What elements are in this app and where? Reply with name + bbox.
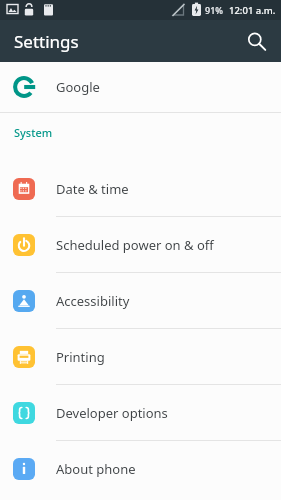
button[interactable]: Printing [0, 329, 281, 384]
button[interactable]: Developer options [0, 385, 281, 440]
staticText: System [14, 125, 53, 140]
button[interactable]: About phone [0, 441, 281, 496]
button[interactable]: Google [0, 62, 281, 112]
button[interactable]: Search [239, 24, 273, 58]
button[interactable]: Date & time [0, 161, 281, 216]
staticText: Date & time [56, 180, 129, 198]
staticText: Printing [56, 348, 105, 366]
staticText: Developer options [56, 404, 168, 422]
staticText: Accessibility [56, 292, 130, 310]
staticText: Settings [14, 30, 79, 53]
staticText: 91% [205, 4, 223, 16]
staticText: Scheduled power on & off [56, 236, 214, 254]
button[interactable]: Accessibility [0, 273, 281, 328]
staticText: About phone [56, 460, 136, 478]
button[interactable]: Scheduled power on & off [0, 217, 281, 272]
staticText: Google [56, 78, 100, 96]
staticText: 12:01 a.m. [229, 4, 276, 17]
